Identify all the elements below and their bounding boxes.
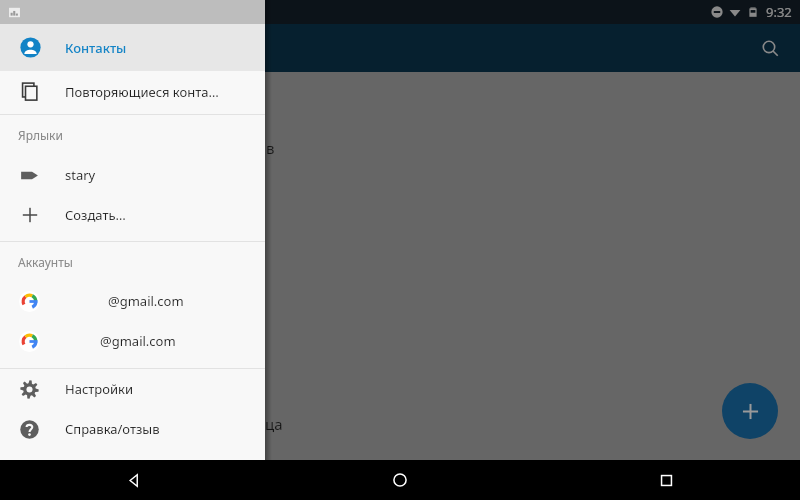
- staticText: в: [266, 136, 275, 156]
- button[interactable]: Справка/отзыв: [0, 409, 265, 449]
- staticText: Аккаунты: [18, 254, 73, 270]
- staticText: Справка/отзыв: [65, 420, 160, 438]
- staticText: Создать…: [65, 206, 126, 224]
- button[interactable]: Повторяющиеся конта…: [0, 71, 265, 112]
- button[interactable]: Home: [266, 460, 533, 500]
- staticText: 9:32: [766, 3, 792, 21]
- staticText: stary: [65, 166, 96, 184]
- staticText: Контакты: [65, 39, 127, 57]
- button[interactable]: Back: [0, 460, 266, 500]
- staticText: ца: [265, 414, 283, 434]
- button[interactable]: Recent apps: [533, 460, 800, 500]
- button[interactable]: Настройки: [0, 369, 265, 409]
- staticText: в: [266, 138, 275, 158]
- staticText: Ярлыки: [18, 127, 63, 143]
- button[interactable]: Add contact: [722, 383, 778, 439]
- staticText: Настройки: [65, 380, 134, 398]
- staticText: Повторяющиеся конта…: [65, 83, 219, 101]
- button[interactable]: Search: [752, 30, 788, 66]
- button[interactable]: @gmail.com: [0, 281, 265, 321]
- button[interactable]: @gmail.com: [0, 321, 265, 361]
- staticText: @gmail.com: [108, 292, 184, 310]
- button[interactable]: stary: [0, 155, 265, 195]
- staticText: ца: [258, 412, 276, 432]
- button[interactable]: Создать…: [0, 195, 265, 235]
- staticText: @gmail.com: [100, 332, 176, 350]
- button[interactable]: Add contact: [722, 381, 778, 437]
- button[interactable]: Контакты: [0, 24, 265, 71]
